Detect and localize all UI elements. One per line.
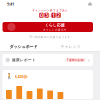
staticText: ポイント大還元中 (43, 28, 67, 31)
button[interactable]: ダッシュボード (0, 42, 47, 51)
staticText: 1 (52, 12, 55, 19)
staticText: ※一部対象外の店舗があります (29, 35, 70, 39)
staticText: 1週間の記録 (67, 58, 84, 62)
staticText: 2 (57, 12, 60, 19)
staticText: ダッシュボード (9, 44, 37, 49)
staticText: 健康レポート (12, 57, 36, 62)
staticText: 9:41 (7, 1, 14, 7)
staticText: チャレンジ (60, 44, 80, 49)
staticText: 8,420歩 (15, 74, 28, 79)
staticText: くらし応援 (45, 23, 65, 27)
button[interactable]: 健康レポート (2, 54, 93, 66)
staticText: › (88, 56, 90, 64)
staticText: 0 (40, 12, 43, 19)
staticText: ıllı (88, 1, 93, 7)
button[interactable]: チャレンジ (47, 42, 94, 51)
staticText: 3 (45, 12, 48, 19)
staticText: 🚶 (6, 73, 13, 80)
button[interactable]: くらし応援 (2, 22, 93, 32)
staticText: キャンペーン終了まであと (32, 9, 68, 12)
